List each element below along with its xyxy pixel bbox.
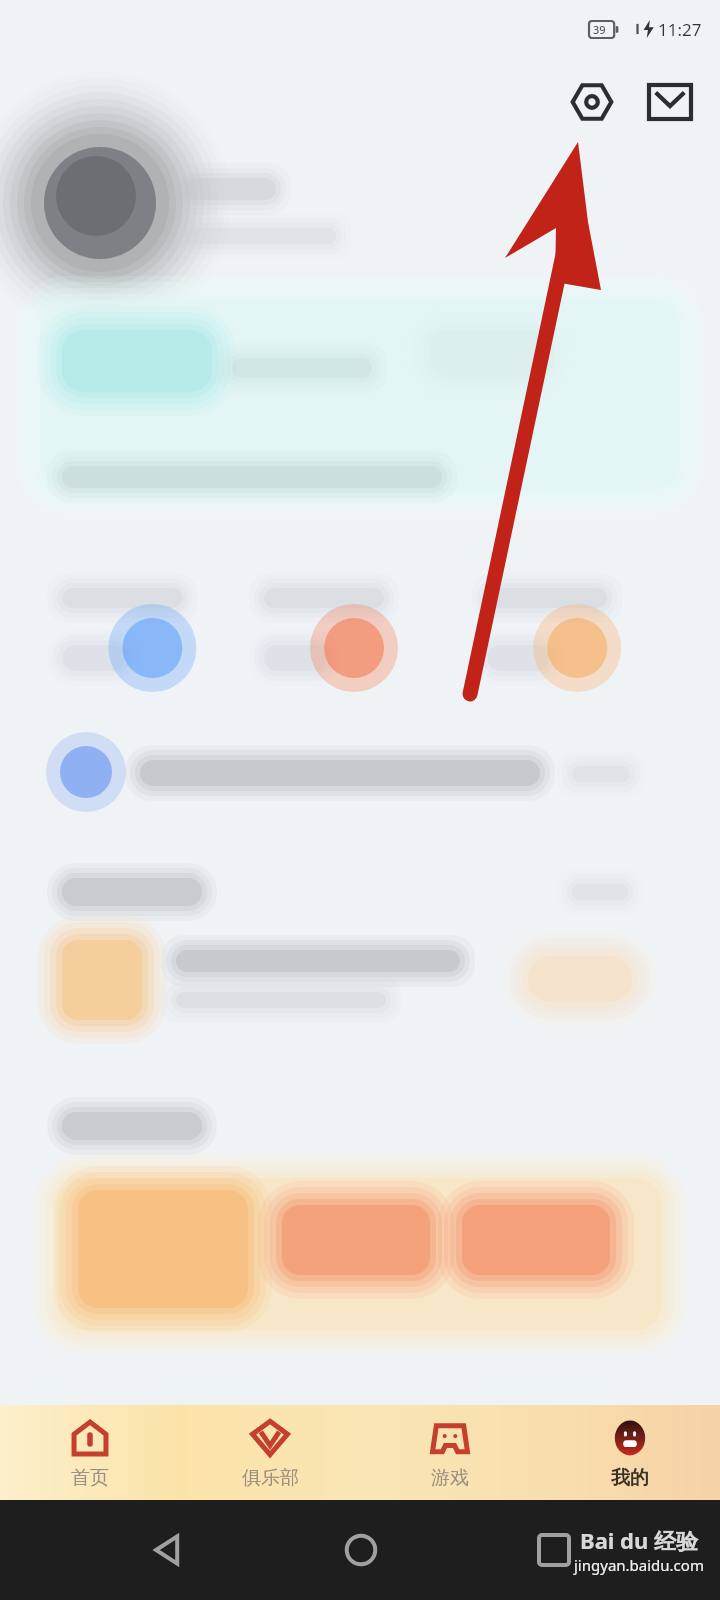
staticText: jingyan.baidu.com [574,1555,704,1575]
staticText: 首页 [71,1466,109,1490]
button[interactable]: 我的 [540,1405,720,1500]
button[interactable]: 游戏 [360,1405,540,1500]
button[interactable]: Messages [642,74,698,130]
staticText: 39 [593,22,606,37]
staticText: 我的 [611,1466,649,1490]
staticText: 游戏 [431,1466,469,1490]
button[interactable]: 俱乐部 [180,1405,360,1500]
staticText: 俱乐部 [242,1466,299,1490]
button[interactable]: Recents [457,1500,650,1600]
button[interactable]: Home [264,1500,457,1600]
staticText: Bai du 经验 [580,1525,699,1555]
button[interactable]: 首页 [0,1405,180,1500]
button[interactable]: Back [70,1500,264,1600]
staticText: 11:27 [658,18,702,41]
button[interactable]: Settings [564,74,620,130]
